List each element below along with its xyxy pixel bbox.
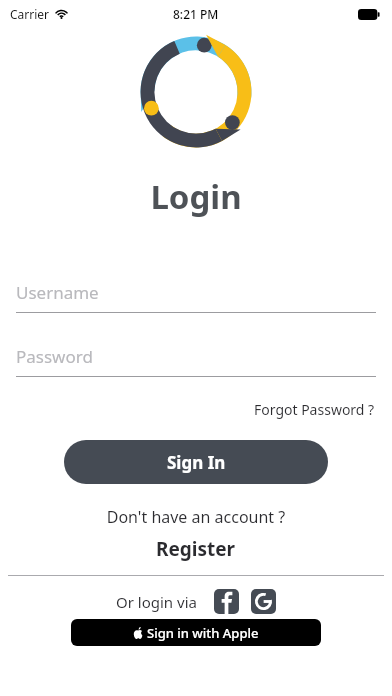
staticText: Username <box>16 281 99 304</box>
staticText: Login <box>0 174 392 219</box>
button[interactable]: Sign In <box>64 440 328 484</box>
button[interactable]: Forgot Password ? <box>251 397 378 422</box>
button[interactable]: Sign in with Google <box>251 589 276 614</box>
button[interactable]: Sign in with Facebook <box>214 589 239 614</box>
staticText: 8:21 PM <box>173 6 219 22</box>
staticText: Password <box>16 345 93 368</box>
button[interactable]: Register <box>148 534 244 564</box>
button[interactable]: Password <box>16 343 376 377</box>
staticText: Don't have an account ? <box>0 506 392 528</box>
staticText: Sign in with Apple <box>147 624 259 642</box>
button[interactable]: Username <box>16 279 376 313</box>
staticText: Register <box>156 536 236 562</box>
staticText: Forgot Password ? <box>254 400 375 419</box>
staticText: Or login via <box>116 592 197 612</box>
staticText: Carrier <box>10 6 50 22</box>
button[interactable]: Sign in with Apple <box>71 619 321 646</box>
staticText: Sign In <box>167 451 226 474</box>
